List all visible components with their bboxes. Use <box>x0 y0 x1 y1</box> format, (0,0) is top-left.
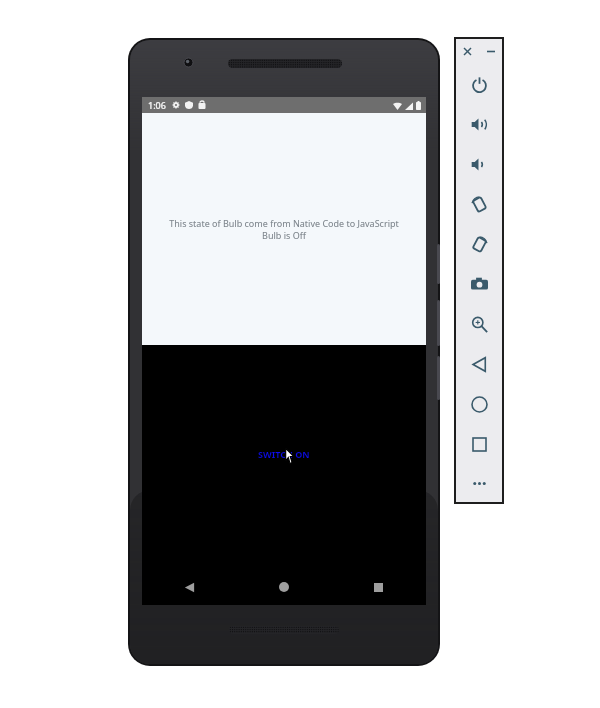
button[interactable]: Zoom <box>455 304 503 344</box>
button[interactable]: Home <box>455 384 503 424</box>
button[interactable]: Home <box>236 569 331 605</box>
button[interactable]: This state of Bulb come from Native Code… <box>142 113 426 345</box>
button[interactable]: Volume up <box>455 104 503 144</box>
button[interactable]: Recent apps <box>455 424 503 464</box>
button[interactable]: Rotate left <box>455 184 503 224</box>
button[interactable]: Back <box>455 344 503 384</box>
button[interactable]: Recent apps <box>331 569 426 605</box>
button[interactable]: Rotate right <box>455 224 503 264</box>
button[interactable]: Minimize <box>484 44 498 58</box>
button[interactable]: Volume down <box>455 144 503 184</box>
staticText: This state of Bulb come from Native Code… <box>169 217 399 229</box>
button[interactable]: Take screenshot <box>455 264 503 304</box>
staticText: SWITCH ON <box>258 448 310 460</box>
staticText: Bulb is Off <box>262 229 306 241</box>
button[interactable]: Power <box>455 64 503 104</box>
button[interactable]: Back <box>142 569 236 605</box>
staticText: 1:06 <box>148 99 166 111</box>
button[interactable]: More <box>455 464 503 503</box>
button[interactable]: Close <box>460 44 474 58</box>
button[interactable]: SWITCH ON <box>252 445 316 463</box>
